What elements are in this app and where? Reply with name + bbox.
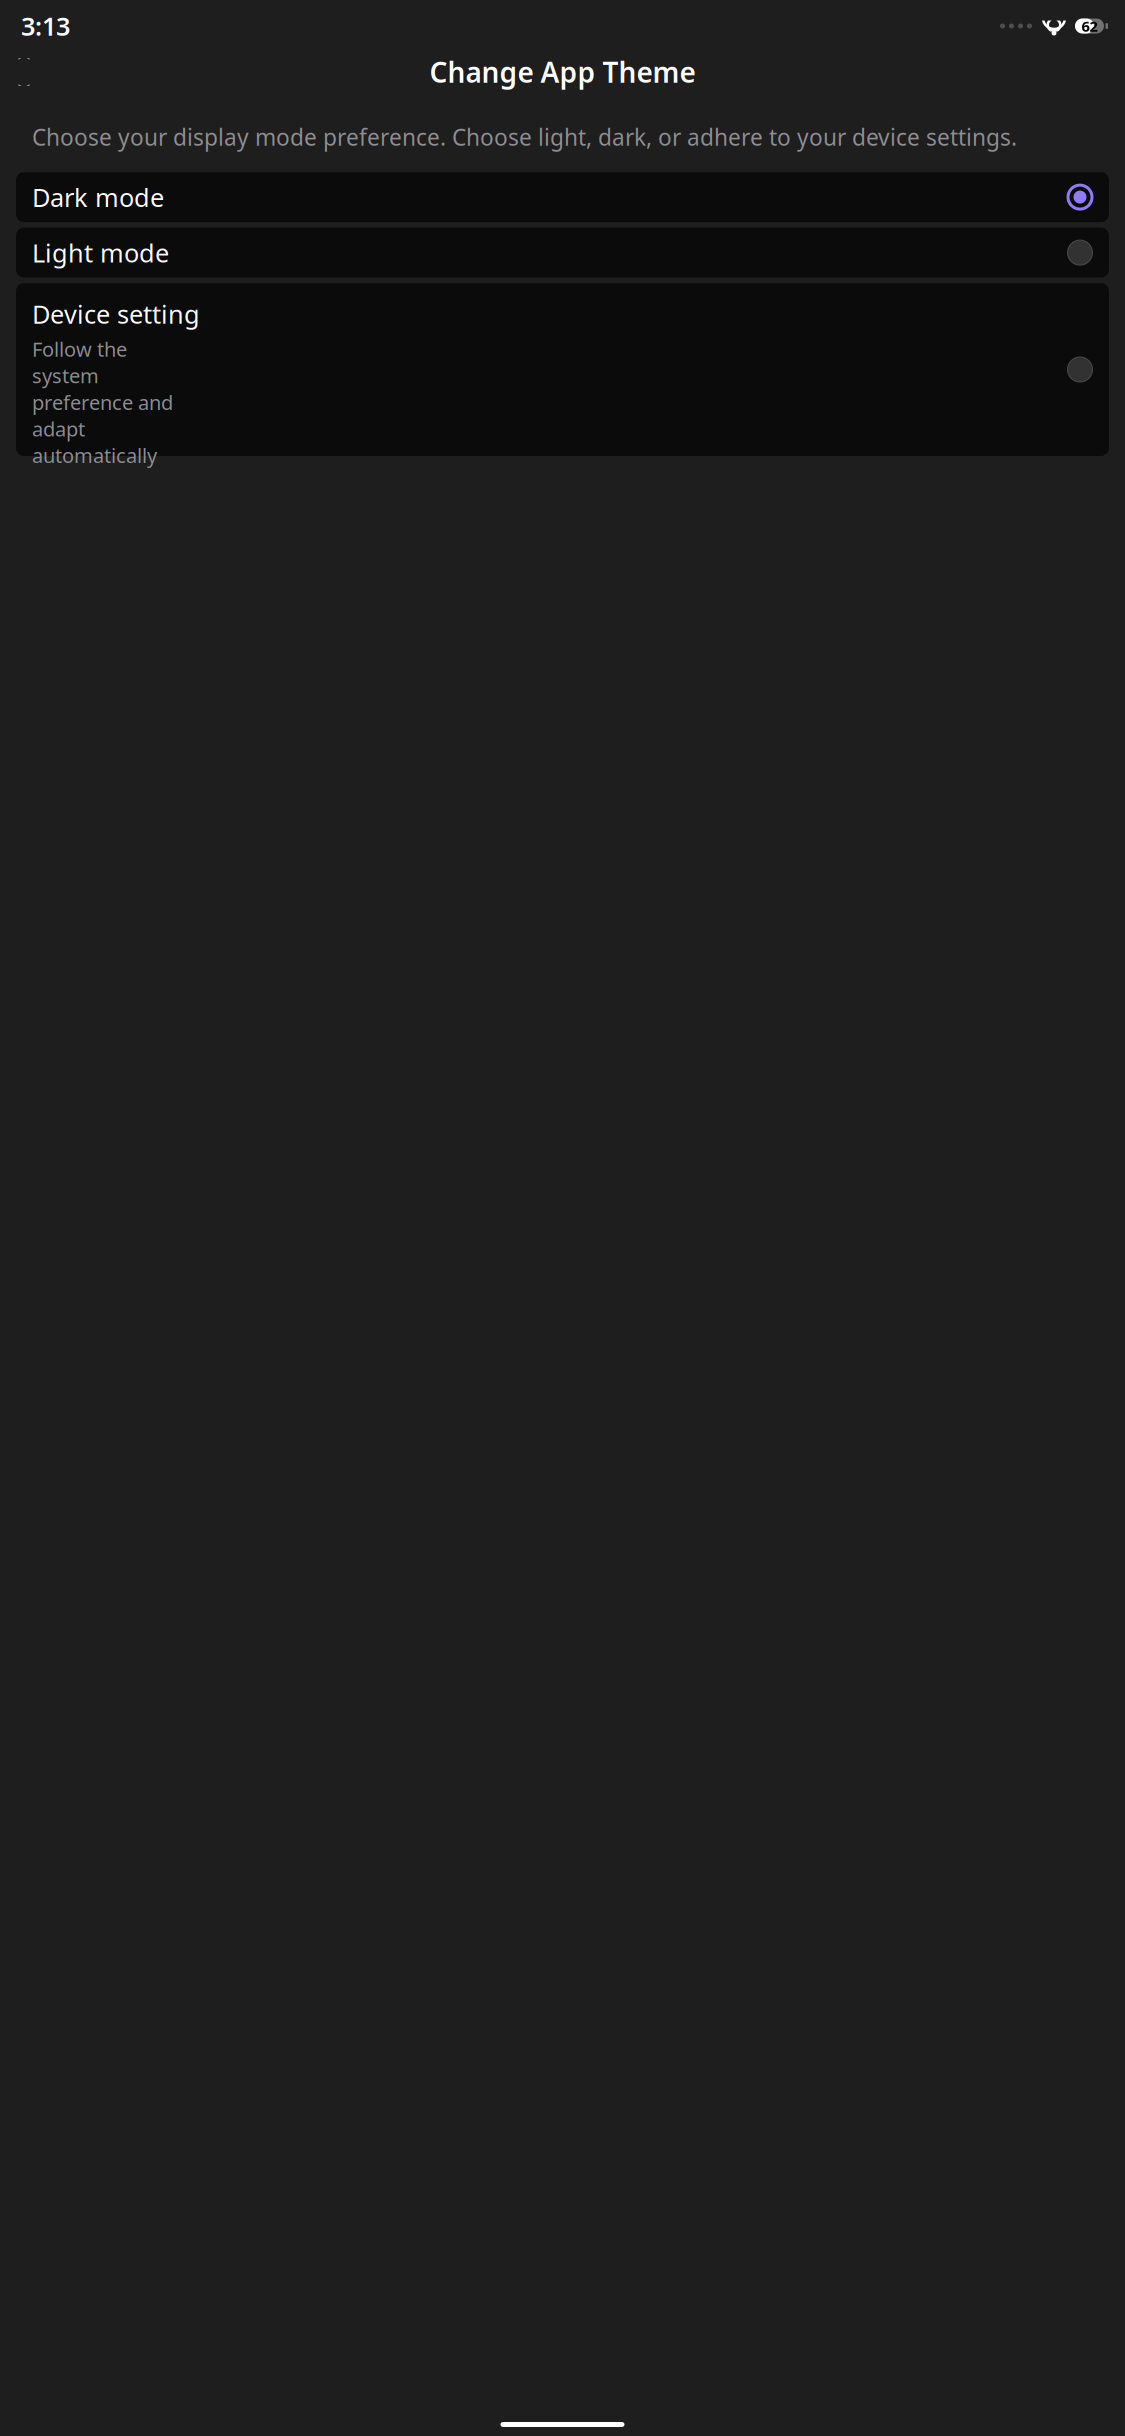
staticText: Follow the system preference and adapt a… bbox=[32, 336, 173, 442]
button[interactable]: Device setting bbox=[16, 283, 1109, 456]
staticText: 3:13 bbox=[21, 9, 70, 43]
button[interactable]: Light mode bbox=[16, 228, 1109, 278]
staticText: Device setting bbox=[32, 297, 200, 331]
staticText: Dark mode bbox=[32, 180, 164, 214]
button[interactable]: Dark mode bbox=[16, 172, 1109, 222]
staticText: Light mode bbox=[32, 236, 169, 269]
button[interactable]: Back bbox=[2, 50, 46, 94]
staticText: Choose your display mode preference. Cho… bbox=[32, 122, 1017, 152]
staticText: Change App Theme bbox=[429, 53, 695, 91]
staticText: 62 bbox=[1081, 16, 1097, 36]
